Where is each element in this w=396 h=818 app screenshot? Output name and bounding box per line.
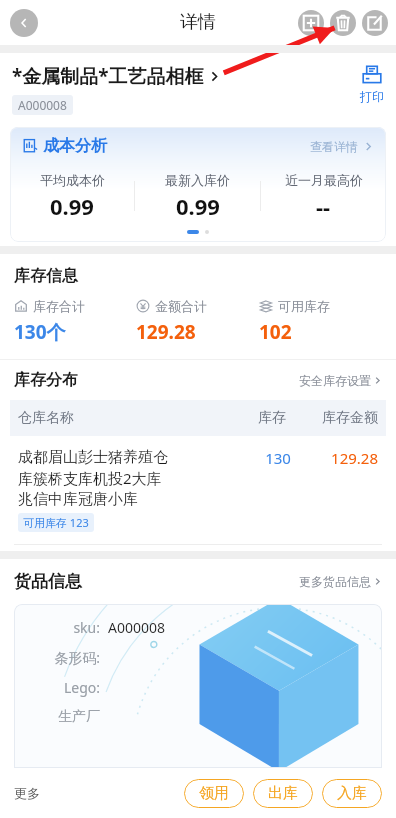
staticText: 出库 — [268, 784, 298, 803]
button[interactable]: Delete — [330, 10, 356, 36]
staticText: 生产厂 — [36, 708, 100, 726]
button[interactable]: 打印 — [360, 65, 384, 104]
button[interactable]: 更多 — [14, 785, 40, 801]
staticText: -- — [316, 191, 331, 221]
staticText: 安全库存设置 — [299, 373, 371, 388]
staticText: 仓库名称 — [18, 409, 244, 427]
staticText: 入库 — [337, 784, 367, 803]
button[interactable]: Add — [298, 10, 324, 36]
staticText: sku: — [36, 618, 100, 637]
staticText: 金额合计 — [155, 298, 207, 314]
button[interactable]: 领用 — [184, 779, 244, 808]
staticText: 库存信息 — [14, 266, 78, 286]
staticText: 库存分布 — [14, 370, 78, 390]
staticText: 打印 — [360, 89, 384, 104]
staticText: 领用 — [199, 784, 229, 803]
staticText: Lego: — [36, 678, 100, 697]
button[interactable]: *金属制品*工艺品相框 — [12, 63, 360, 115]
button[interactable]: Back — [10, 9, 38, 37]
staticText: 0.99 — [176, 191, 220, 221]
button[interactable]: 更多货品信息 — [299, 574, 382, 589]
staticText: 查看详情 — [310, 139, 358, 154]
staticText: 平均成本价 — [40, 172, 105, 188]
staticText: 129.28 — [136, 319, 196, 345]
staticText: 102 — [259, 319, 292, 345]
staticText: 货品信息 — [14, 571, 82, 592]
staticText: 最新入库价 — [165, 172, 230, 188]
staticText: A000008 — [18, 97, 67, 113]
staticText: 130 — [250, 448, 306, 468]
staticText: A000008 — [108, 618, 165, 637]
staticText: 成本分析 — [43, 136, 107, 156]
staticText: 0.99 — [50, 191, 94, 221]
staticText: 129.28 — [306, 448, 378, 468]
button[interactable]: Edit — [362, 10, 388, 36]
staticText: 近一月最高价 — [285, 172, 363, 188]
staticText: 更多货品信息 — [299, 574, 371, 589]
staticText: 库存 — [244, 409, 300, 427]
staticText: 库存合计 — [33, 298, 85, 314]
staticText: 可用库存 — [278, 298, 330, 314]
staticText: 成都眉山彭士猪养殖仓 库簇桥支库机投2大库 兆信中库冠唐小库 — [18, 448, 168, 508]
button[interactable]: 查看详情 — [310, 139, 374, 154]
staticText: 详情 — [180, 11, 216, 34]
staticText: *金属制品*工艺品相框 — [12, 63, 204, 89]
staticText: 条形码: — [36, 648, 100, 667]
staticText: 可用库存 123 — [23, 515, 89, 530]
staticText: 130个 — [14, 319, 66, 345]
button[interactable]: 入库 — [322, 779, 382, 808]
staticText: 库存金额 — [300, 409, 378, 427]
button[interactable]: 出库 — [253, 779, 313, 808]
button[interactable]: 安全库存设置 — [299, 373, 382, 388]
